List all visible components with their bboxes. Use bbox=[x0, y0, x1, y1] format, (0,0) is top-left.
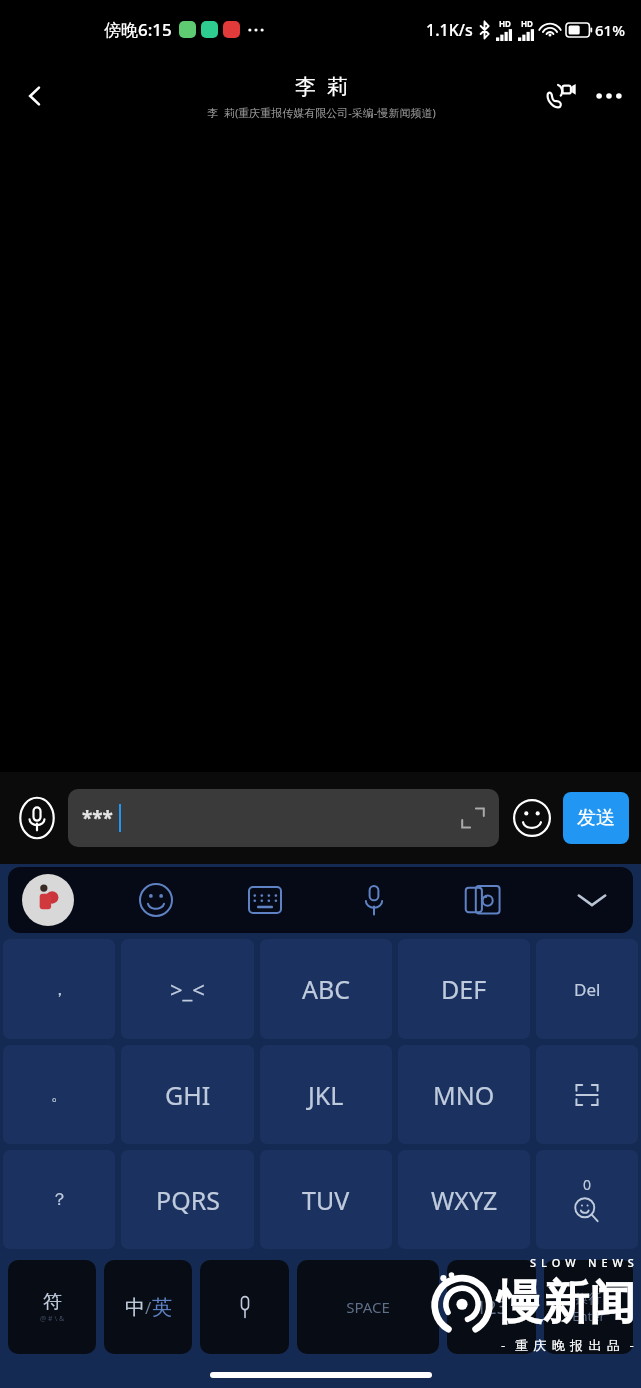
staticText: 发送 bbox=[577, 806, 615, 830]
button[interactable]: Stickers bbox=[129, 873, 183, 927]
staticText: DEF bbox=[441, 972, 487, 1006]
button[interactable]: Emoji bbox=[509, 795, 555, 841]
button[interactable]: 发送 bbox=[563, 792, 629, 844]
button[interactable]: ？ bbox=[3, 1150, 115, 1249]
button[interactable]: 换行 Enter bbox=[544, 1260, 633, 1354]
button[interactable]: Voice input bbox=[12, 793, 62, 843]
button[interactable]: Voice input bbox=[200, 1260, 289, 1354]
button[interactable]: SPACE bbox=[297, 1260, 439, 1354]
staticText: 李 莉(重庆重报传媒有限公司-采编-慢新闻频道) bbox=[207, 105, 436, 120]
staticText: GHI bbox=[165, 1078, 211, 1112]
staticText: - 重 庆 晚 报 出 品 - bbox=[501, 1336, 635, 1354]
staticText: 61% bbox=[595, 20, 625, 40]
button[interactable]: >_< bbox=[121, 939, 254, 1039]
button[interactable]: MNO bbox=[398, 1045, 530, 1144]
staticText: 1.1K/s bbox=[426, 19, 473, 41]
button[interactable]: Voice bbox=[347, 873, 401, 927]
button[interactable]: 。 bbox=[3, 1045, 115, 1144]
staticText: SPACE bbox=[346, 1297, 390, 1317]
staticText: JKL bbox=[308, 1078, 344, 1112]
button[interactable]: TUV bbox=[260, 1150, 392, 1249]
button[interactable]: ， bbox=[3, 939, 115, 1039]
button[interactable]: ABC bbox=[260, 939, 392, 1039]
button[interactable]: 123 bbox=[447, 1260, 536, 1354]
staticText: 中 bbox=[125, 1295, 145, 1320]
button[interactable]: WXYZ bbox=[398, 1150, 530, 1249]
staticText: *** bbox=[82, 805, 113, 831]
staticText: 李 莉 bbox=[295, 72, 348, 101]
staticText: PQRS bbox=[156, 1183, 220, 1217]
staticText: 傍晚6:15 bbox=[104, 18, 172, 41]
button[interactable]: GHI bbox=[121, 1045, 254, 1144]
staticText: ， bbox=[51, 979, 68, 1000]
button[interactable]: JKL bbox=[260, 1045, 392, 1144]
button[interactable]: 符 bbox=[8, 1260, 96, 1354]
button[interactable]: Emoji search bbox=[536, 1150, 638, 1249]
staticText: 123 bbox=[476, 1295, 507, 1320]
button[interactable]: PQRS bbox=[121, 1150, 254, 1249]
button[interactable]: 中 bbox=[104, 1260, 192, 1354]
staticText: HD bbox=[499, 18, 511, 29]
button[interactable]: Photos bbox=[456, 873, 510, 927]
button[interactable]: Avatar bbox=[22, 874, 74, 926]
staticText: 符 bbox=[43, 1290, 62, 1314]
staticText: TUV bbox=[302, 1183, 350, 1217]
button[interactable]: Del bbox=[536, 939, 638, 1039]
staticText: 。 bbox=[51, 1084, 68, 1105]
staticText: WXYZ bbox=[431, 1183, 498, 1217]
staticText: Del bbox=[574, 978, 601, 1001]
staticText: ABC bbox=[302, 972, 351, 1006]
staticText: 换行 Enter bbox=[572, 1290, 605, 1325]
staticText: 英 bbox=[152, 1295, 172, 1320]
staticText: 慢新闻 bbox=[497, 1274, 635, 1332]
button[interactable]: Video call bbox=[537, 72, 585, 120]
staticText: ？ bbox=[51, 1189, 68, 1210]
button[interactable]: More options bbox=[585, 72, 633, 120]
button[interactable]: *** bbox=[68, 789, 499, 847]
staticText: / bbox=[145, 1296, 152, 1319]
staticText: @ # \ & bbox=[40, 1314, 65, 1324]
button[interactable]: Enter bbox=[536, 1045, 638, 1144]
staticText: >_< bbox=[170, 974, 205, 1004]
staticText: 0 bbox=[583, 1175, 592, 1194]
staticText: MNO bbox=[433, 1078, 495, 1112]
button[interactable]: Keyboard layout bbox=[238, 873, 292, 927]
button[interactable]: Back bbox=[0, 58, 70, 133]
button[interactable]: Collapse keyboard bbox=[565, 873, 619, 927]
staticText: S L O W N E W S bbox=[530, 1255, 635, 1270]
staticText: HD bbox=[521, 18, 533, 29]
button[interactable]: DEF bbox=[398, 939, 530, 1039]
